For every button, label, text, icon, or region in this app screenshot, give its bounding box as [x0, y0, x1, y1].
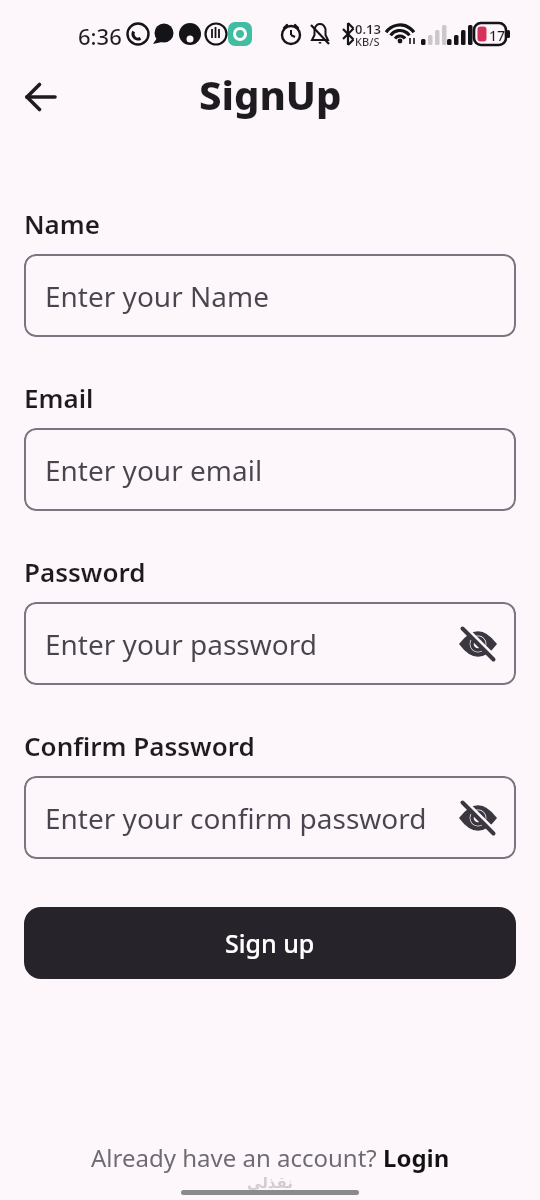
button[interactable]: Enter your Name [24, 254, 516, 337]
staticText: Name [24, 206, 100, 241]
button[interactable]: Enter your password [24, 602, 516, 685]
staticText: 17 [489, 26, 506, 45]
button[interactable]: Enter your email [24, 428, 516, 511]
button[interactable] [458, 798, 498, 838]
staticText: Enter your Name [45, 277, 516, 315]
staticText: KB/S [355, 34, 380, 49]
button[interactable]: Sign up [24, 907, 516, 979]
button[interactable] [19, 75, 63, 119]
staticText: نقذلي [247, 1174, 293, 1191]
staticText: SignUp [199, 67, 342, 121]
staticText: Enter your password [45, 625, 458, 663]
button[interactable] [458, 624, 498, 664]
staticText: 6:36 [78, 21, 122, 51]
staticText: Email [24, 380, 94, 415]
button[interactable]: Enter your confirm password [24, 776, 516, 859]
staticText: 0.13 [355, 20, 381, 38]
staticText: Enter your email [45, 451, 516, 489]
button[interactable]: Already have an account? Login [91, 1141, 450, 1174]
staticText: Sign up [225, 926, 315, 960]
staticText: Password [24, 554, 146, 589]
staticText: Enter your confirm password [45, 799, 458, 837]
staticText: Confirm Password [24, 728, 255, 763]
